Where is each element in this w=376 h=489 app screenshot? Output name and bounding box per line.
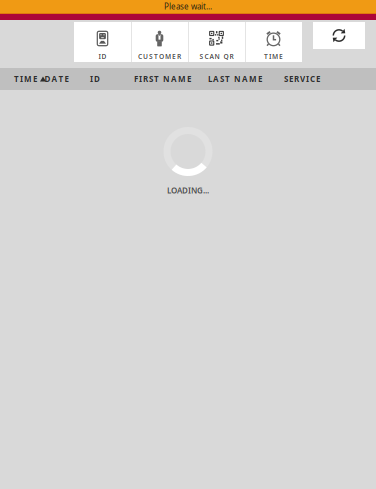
button[interactable]: S C A N Q R [188, 22, 245, 62]
staticText: F I R S T N A M E [134, 74, 191, 84]
button[interactable]: I D [74, 22, 131, 62]
staticText: S E R V I C E [284, 74, 320, 84]
staticText: I D [90, 74, 100, 84]
button[interactable]: C U S T O M E R [131, 22, 188, 62]
staticText: S C A N Q R [199, 52, 233, 61]
staticText: T I M E [264, 52, 283, 61]
staticText: L A S T N A M E [208, 74, 262, 84]
button[interactable]: L A S T N A M E [208, 68, 262, 90]
staticText: LOADING... [167, 185, 209, 196]
button[interactable]: F I R S T N A M E [134, 68, 191, 90]
button[interactable]: I D [90, 68, 100, 90]
staticText: Please wait... [164, 1, 212, 12]
button[interactable]: Refresh [313, 22, 365, 49]
staticText: T I M E [14, 74, 37, 84]
button[interactable]: T I M E [245, 22, 302, 62]
staticText: D A T E [44, 74, 68, 84]
button[interactable]: D A T E [44, 68, 68, 90]
button[interactable]: S E R V I C E [284, 68, 320, 90]
staticText: I D [98, 52, 106, 61]
staticText: C U S T O M E R [138, 52, 181, 61]
button[interactable]: T I M E [14, 68, 46, 90]
